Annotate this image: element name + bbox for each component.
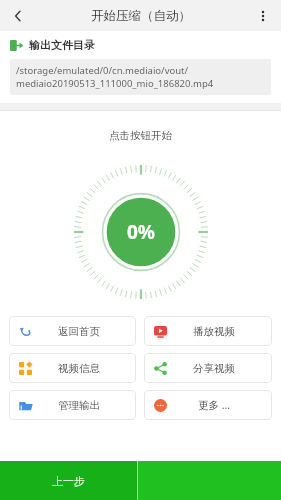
staticText: 分享视频 xyxy=(193,362,235,375)
staticText: 管理输出 xyxy=(58,399,100,412)
staticText: 播放视频 xyxy=(193,325,235,338)
staticText: 点击按钮开始 xyxy=(109,129,172,142)
button[interactable]: 视频信息 xyxy=(9,353,136,383)
button[interactable]: 返回首页 xyxy=(9,316,136,346)
button[interactable]: 上一步 xyxy=(0,461,137,500)
staticText: 输出文件目录 xyxy=(29,38,95,52)
button[interactable]: More options xyxy=(245,0,281,31)
staticText: 更多 ... xyxy=(198,398,231,412)
staticText: 上一步 xyxy=(52,474,85,488)
button[interactable]: 分享视频 xyxy=(144,353,272,383)
staticText: 0% xyxy=(127,219,156,245)
staticText: 返回首页 xyxy=(58,325,100,338)
button[interactable]: Back xyxy=(0,0,36,31)
staticText: 视频信息 xyxy=(58,362,100,375)
button[interactable]: 管理输出 xyxy=(9,390,136,420)
button[interactable]: 更多 ... xyxy=(144,390,272,420)
staticText: 开始压缩（自动） xyxy=(91,8,191,24)
button[interactable]: 播放视频 xyxy=(144,316,272,346)
staticText: /storage/emulated/0/cn.mediaio/vout/ med… xyxy=(16,64,214,90)
